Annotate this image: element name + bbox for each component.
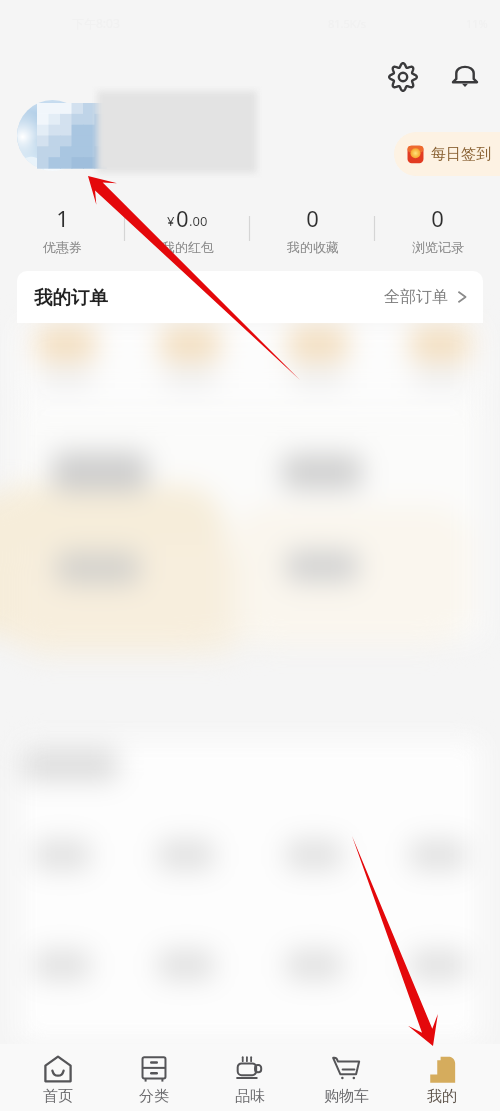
button[interactable]: 我的 [394,1044,490,1111]
staticText: 首页 [43,1087,73,1106]
button[interactable]: Notifications [450,60,480,90]
staticText: 全部订单 [384,287,448,307]
button[interactable]: 购物车 [298,1044,394,1111]
button[interactable]: 0 [250,193,375,265]
staticText: 每日签到 [431,145,491,164]
staticText: 0 [431,203,444,233]
button[interactable]: 0 [375,193,500,265]
button[interactable]: 1 [0,193,125,265]
staticText: 我的红包 [162,239,214,255]
staticText: 浏览记录 [412,239,464,255]
button[interactable]: Profile photo [17,100,88,171]
button[interactable]: 首页 [10,1044,106,1111]
staticText: 0 [306,203,319,233]
staticText: 我的 [427,1087,457,1106]
staticText: 优惠券 [43,239,82,255]
staticText: 0 [176,203,189,233]
staticText: ¥ [167,212,175,230]
button[interactable]: 每日签到 [394,132,500,176]
button[interactable]: 我的订单 [17,271,483,323]
button[interactable]: Settings [388,62,418,92]
staticText: .00 [189,212,208,230]
staticText: 1 [56,203,69,233]
button[interactable]: 品味 [202,1044,298,1111]
staticText: 我的收藏 [287,239,339,255]
staticText: 我的订单 [34,286,108,309]
staticText: 分类 [139,1087,169,1106]
staticText: 购物车 [324,1087,369,1106]
button[interactable]: ¥ [125,193,250,265]
button[interactable]: 分类 [106,1044,202,1111]
staticText: 品味 [235,1087,265,1106]
